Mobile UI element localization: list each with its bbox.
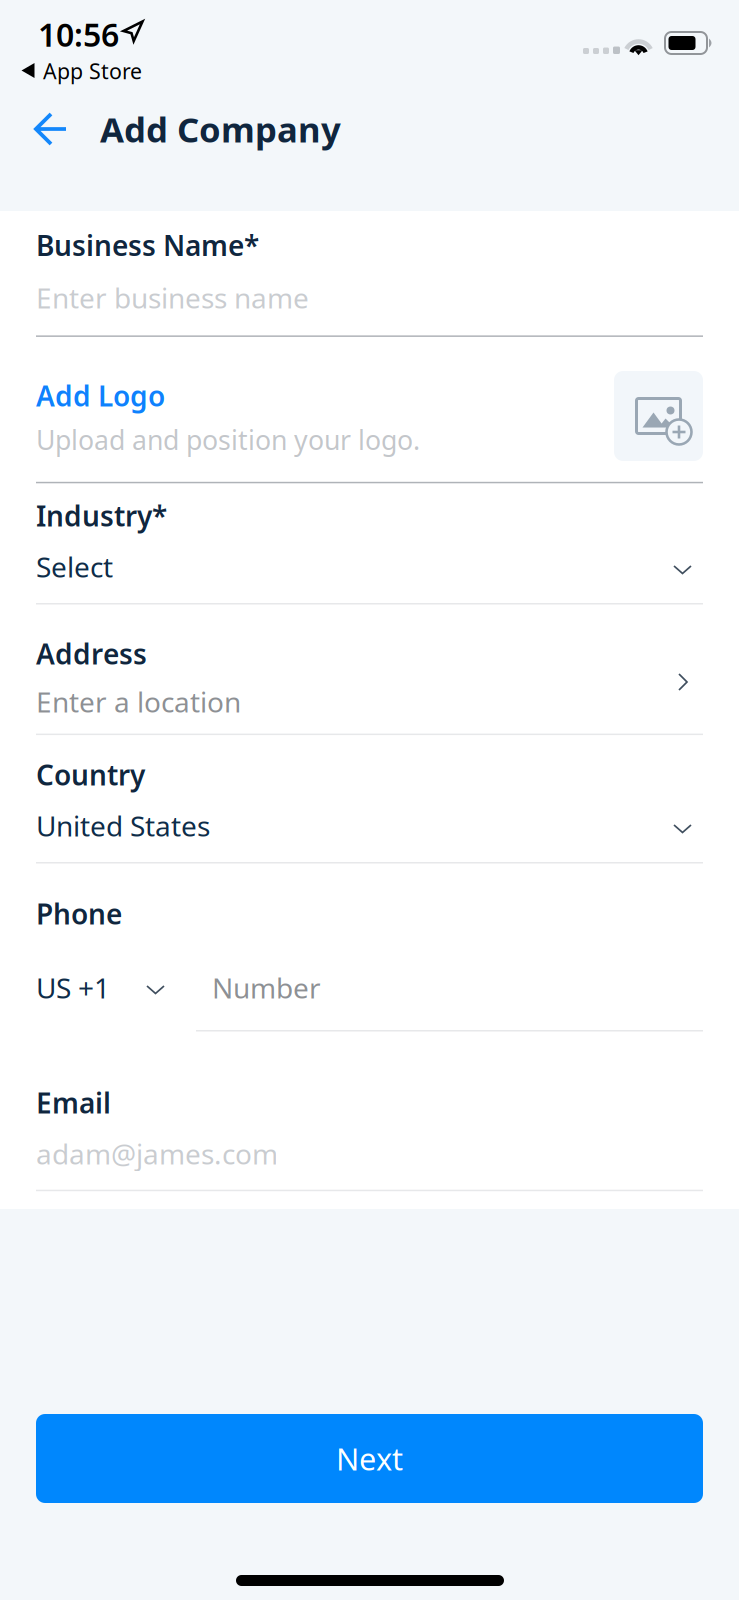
staticText: US +1 <box>36 969 110 1006</box>
staticText: Phone <box>36 895 122 932</box>
button[interactable]: Back <box>18 98 84 160</box>
button[interactable]: US +1 <box>36 962 186 1018</box>
staticText: Add Company <box>100 106 341 152</box>
staticText: Select <box>36 548 113 585</box>
staticText: Country <box>36 756 145 793</box>
staticText: 10:56 <box>38 13 119 55</box>
button[interactable]: Business Name* <box>36 215 703 336</box>
staticText: Number <box>212 969 321 1006</box>
staticText: United States <box>36 807 210 844</box>
staticText: Enter business name <box>36 279 309 316</box>
button[interactable]: Industry* <box>36 482 703 604</box>
staticText: Add Logo <box>36 377 165 414</box>
staticText: Industry* <box>36 497 167 534</box>
button[interactable]: Add Logo <box>36 336 703 482</box>
button[interactable]: Email <box>36 1062 703 1192</box>
staticText: Email <box>36 1084 111 1121</box>
button[interactable]: App Store <box>21 59 146 83</box>
button[interactable]: Number <box>196 962 703 1038</box>
button[interactable]: Address <box>36 604 703 734</box>
staticText: Business Name* <box>36 227 259 264</box>
staticText: adam@james.com <box>36 1135 278 1172</box>
staticText: App Store <box>43 57 142 85</box>
button[interactable]: Next <box>36 1414 703 1503</box>
staticText: Upload and position your logo. <box>36 422 420 457</box>
staticText: Address <box>36 635 147 672</box>
staticText: Enter a location <box>36 683 241 720</box>
staticText: Next <box>336 1438 403 1479</box>
button[interactable]: Country <box>36 734 703 862</box>
